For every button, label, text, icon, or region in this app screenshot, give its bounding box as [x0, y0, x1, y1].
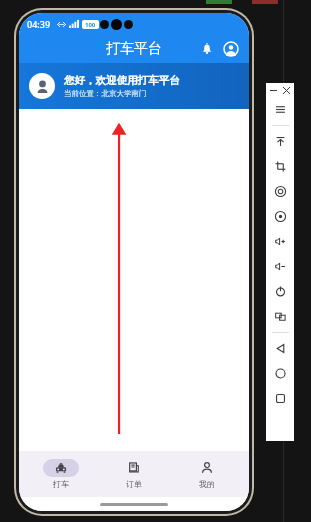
staticText: 当前位置：北京大学南门 — [64, 89, 147, 98]
button[interactable]: Minimize — [269, 86, 278, 95]
button[interactable]: Target — [266, 204, 294, 229]
staticText: 您好，欢迎使用打车平台 — [64, 74, 180, 87]
button[interactable]: Volume up — [266, 229, 294, 254]
staticText: 订单 — [126, 479, 142, 489]
button[interactable]: Power — [266, 279, 294, 304]
button[interactable]: Home — [266, 361, 294, 386]
button[interactable]: Volume down — [266, 254, 294, 279]
button[interactable]: Copy — [266, 304, 294, 329]
staticText: 100 — [85, 21, 96, 29]
button[interactable]: Scroll to top — [266, 129, 294, 154]
button[interactable]: 您好，欢迎使用打车平台 — [19, 63, 249, 109]
button[interactable]: 我的 — [176, 451, 238, 497]
button[interactable]: Back — [266, 336, 294, 361]
button[interactable]: Rotate — [266, 179, 294, 204]
staticText: 04:39 — [27, 18, 51, 30]
button[interactable]: Crop — [266, 154, 294, 179]
button[interactable]: Recents — [266, 386, 294, 411]
button[interactable]: Notifications — [195, 37, 219, 61]
staticText: 打车 — [53, 479, 69, 489]
button[interactable]: Profile — [219, 37, 243, 61]
button[interactable]: Menu — [266, 97, 294, 122]
button[interactable]: Close — [282, 86, 291, 95]
button[interactable]: 打车 — [30, 451, 92, 497]
button[interactable]: 订单 — [103, 451, 165, 497]
staticText: 我的 — [199, 479, 215, 489]
staticText: 打车平台 — [106, 40, 162, 58]
